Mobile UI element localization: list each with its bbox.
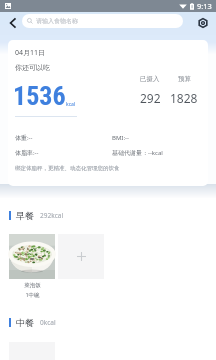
staticText: 0kcal xyxy=(40,318,56,327)
staticText: 已摄入 xyxy=(140,75,160,83)
button[interactable]: 菜泡饭 xyxy=(9,234,55,299)
staticText: 9:13 xyxy=(197,1,212,11)
staticText: 菜泡饭 xyxy=(24,282,41,289)
staticText: 292 xyxy=(140,90,161,106)
staticText: 你还可以吃 xyxy=(15,63,50,72)
staticText: 1536 xyxy=(13,81,66,111)
staticText: 基础代谢量：--kcal xyxy=(112,149,163,157)
button[interactable]: 早餐 xyxy=(0,209,216,221)
staticText: 04月11日 xyxy=(15,48,46,58)
staticText: 1中碗 xyxy=(25,291,40,299)
staticText: 292kcal xyxy=(40,211,64,220)
staticText: kcal xyxy=(66,101,76,108)
staticText: 1828 xyxy=(170,90,198,106)
staticText: 请输入食物名称 xyxy=(36,17,78,25)
staticText: 中餐 xyxy=(16,317,34,328)
staticText: 早餐 xyxy=(16,210,34,221)
button[interactable]: 中餐 xyxy=(0,316,216,328)
button[interactable]: 请输入食物名称 xyxy=(22,14,183,28)
staticText: 绑定体脂秤，更精准、动态化管理您的饮食 xyxy=(15,165,120,172)
button[interactable]: Settings xyxy=(192,12,214,34)
staticText: 体重:-- xyxy=(15,134,33,142)
button[interactable]: Back xyxy=(4,12,22,34)
staticText: BMI:-- xyxy=(112,134,129,142)
button[interactable]: Add food xyxy=(58,234,104,279)
staticText: 预算 xyxy=(178,75,191,83)
staticText: 体脂率:-- xyxy=(15,149,39,157)
